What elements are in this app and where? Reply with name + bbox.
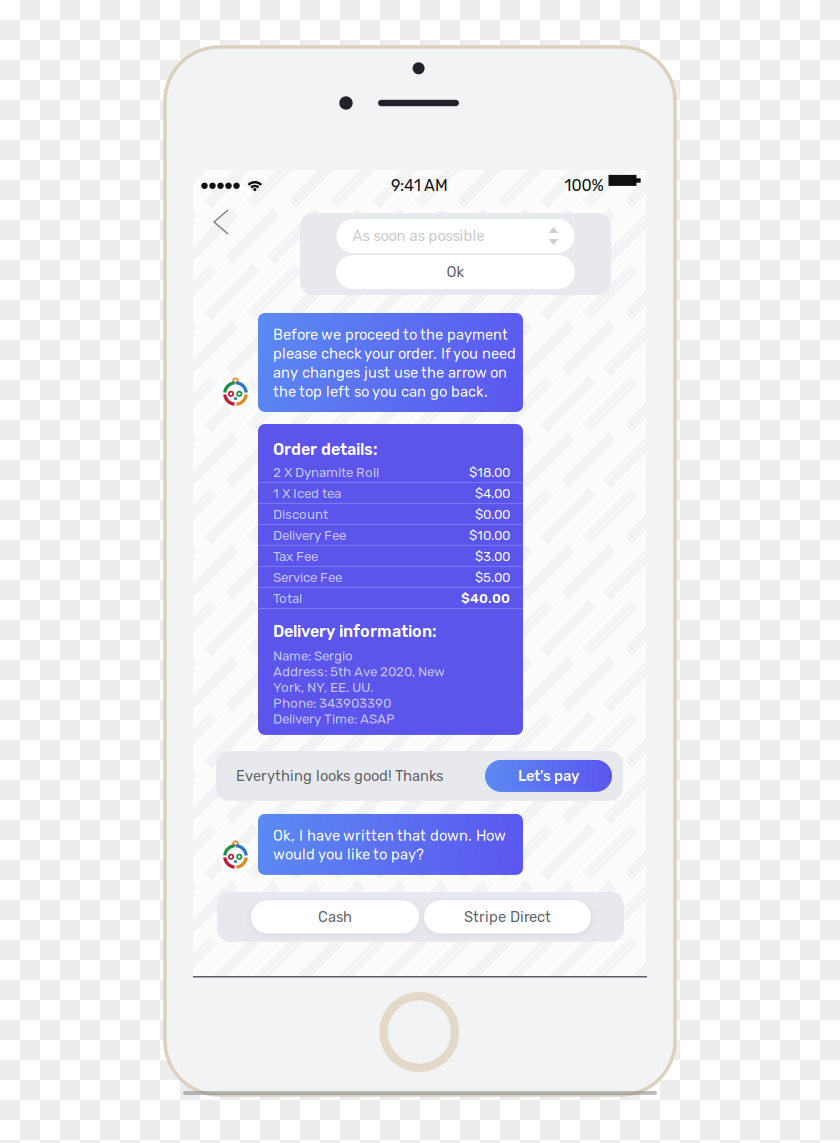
staticText: Total [273, 591, 302, 606]
button[interactable]: Let's pay [485, 760, 612, 792]
staticText: Ok [446, 263, 464, 281]
staticText: Service Fee [273, 570, 342, 585]
staticText: Stripe Direct [464, 908, 551, 926]
button[interactable]: Stripe Direct [424, 900, 591, 933]
staticText: Let's pay [518, 767, 579, 785]
button[interactable]: As soon as possible [336, 219, 574, 253]
staticText: Name: Sergio Address: 5th Ave 2020, New … [273, 648, 445, 727]
staticText: Cash [318, 908, 352, 926]
staticText: Delivery information: [273, 622, 437, 641]
staticText: Order details: [273, 440, 378, 459]
staticText: Tax Fee [273, 549, 318, 564]
button[interactable]: Ok [336, 255, 575, 289]
staticText: Before we proceed to the payment please … [273, 326, 516, 400]
staticText: As soon as possible [352, 227, 484, 245]
button[interactable]: Back [199, 196, 243, 248]
staticText: $4.00 [475, 486, 510, 501]
staticText: 1 X Iced tea [273, 486, 341, 501]
staticText: Discount [273, 507, 328, 522]
staticText: Delivery Fee [273, 528, 346, 543]
staticText: $5.00 [475, 570, 510, 585]
staticText: Everything looks good! Thanks [236, 767, 443, 785]
button[interactable]: Cash [251, 900, 419, 933]
staticText: $40.00 [461, 591, 510, 606]
staticText: Ok, I have written that down. How would … [273, 827, 506, 863]
staticText: 2 X Dynamite Roll [273, 465, 379, 480]
staticText: 9:41 AM [391, 176, 448, 195]
staticText: $10.00 [469, 528, 510, 543]
staticText: 100% [564, 176, 603, 195]
staticText: $0.00 [475, 507, 510, 522]
staticText: $18.00 [469, 465, 510, 480]
staticText: $3.00 [475, 549, 510, 564]
